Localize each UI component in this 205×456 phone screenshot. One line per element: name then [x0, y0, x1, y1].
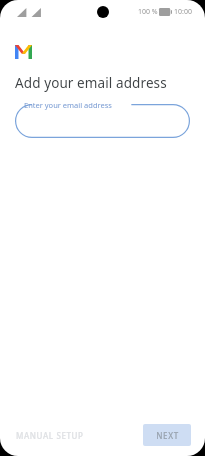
button[interactable]: MANUAL SETUP [8, 424, 92, 447]
staticText: Add your email address [15, 74, 167, 92]
staticText: MANUAL SETUP [16, 430, 84, 441]
staticText: NEXT [156, 430, 179, 441]
button[interactable]: NEXT [143, 424, 191, 446]
staticText: 10:00 [174, 7, 192, 17]
button[interactable]: Enter your email address [15, 104, 190, 138]
staticText: Enter your email address [24, 100, 112, 110]
staticText: 100 % [138, 7, 158, 17]
